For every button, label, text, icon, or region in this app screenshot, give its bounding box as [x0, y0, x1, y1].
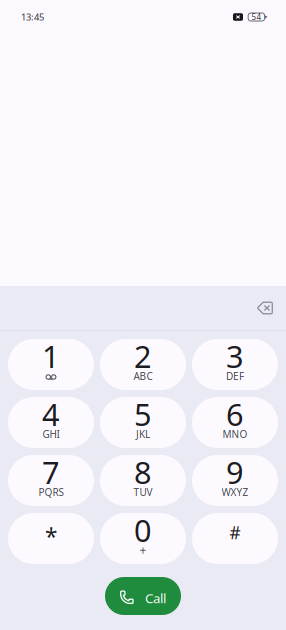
staticText: 4: [42, 393, 60, 435]
staticText: 9: [226, 451, 244, 493]
button[interactable]: *: [8, 513, 94, 564]
button[interactable]: Delete: [245, 288, 285, 328]
staticText: MNO: [222, 427, 247, 441]
staticText: #: [229, 521, 240, 544]
button[interactable]: 0: [100, 513, 186, 564]
button[interactable]: 4: [8, 397, 94, 448]
staticText: 13:45: [21, 11, 44, 23]
button[interactable]: 7: [8, 455, 94, 506]
staticText: *: [45, 521, 57, 552]
button[interactable]: 9: [192, 455, 278, 506]
staticText: PQRS: [38, 485, 63, 499]
staticText: 5: [134, 393, 152, 435]
staticText: Call: [145, 589, 166, 607]
button[interactable]: 5: [100, 397, 186, 448]
staticText: 7: [42, 451, 60, 493]
button[interactable]: 3: [192, 339, 278, 390]
staticText: 6: [226, 393, 244, 435]
staticText: ABC: [133, 369, 152, 383]
staticText: 2: [134, 335, 152, 377]
button[interactable]: 6: [192, 397, 278, 448]
staticText: JKL: [136, 427, 150, 441]
staticText: DEF: [226, 369, 244, 383]
staticText: 8: [134, 451, 152, 493]
staticText: 1: [42, 335, 60, 377]
staticText: +: [139, 542, 146, 558]
staticText: 3: [226, 335, 244, 377]
staticText: 54: [251, 12, 261, 22]
staticText: 0: [134, 509, 152, 551]
staticText: GHI: [42, 427, 59, 441]
button[interactable]: #: [192, 513, 278, 564]
staticText: TUV: [133, 485, 152, 499]
button[interactable]: 1: [8, 339, 94, 390]
button[interactable]: 2: [100, 339, 186, 390]
staticText: WXYZ: [221, 485, 248, 499]
button[interactable]: 8: [100, 455, 186, 506]
button[interactable]: Call: [105, 577, 181, 615]
